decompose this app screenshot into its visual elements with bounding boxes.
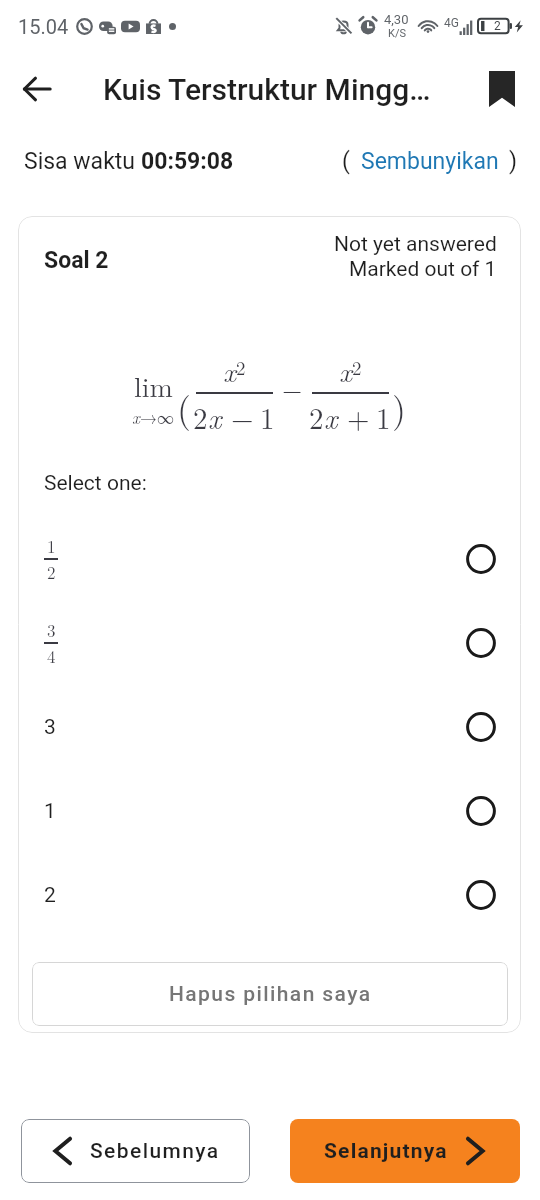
- staticText: 1: [44, 799, 56, 824]
- staticText: 1: [260, 396, 275, 437]
- staticText: +: [347, 396, 370, 437]
- staticText: Selanjutnya: [324, 1139, 448, 1164]
- staticText: ): [509, 148, 518, 175]
- staticText: ): [392, 381, 407, 432]
- staticText: Hapus pilihan saya: [169, 982, 372, 1007]
- button[interactable]: Sebelumnya: [21, 1119, 250, 1183]
- staticText: Sisa waktu: [24, 148, 141, 175]
- staticText: Kuis Terstruktur Mingg…: [103, 72, 431, 107]
- staticText: 2: [47, 560, 56, 584]
- button[interactable]: 3: [18, 685, 521, 769]
- staticText: (: [177, 381, 192, 432]
- staticText: x: [339, 350, 352, 390]
- staticText: Sebelumnya: [90, 1139, 220, 1164]
- button[interactable]: 3: [18, 601, 521, 685]
- staticText: K/S: [388, 27, 406, 40]
- staticText: x: [132, 405, 140, 429]
- staticText: 4: [47, 644, 56, 668]
- staticText: (: [342, 148, 350, 175]
- staticText: Not yet answered: [334, 232, 497, 257]
- staticText: 4,30: [384, 12, 409, 27]
- staticText: 1: [376, 396, 391, 437]
- button[interactable]: 1: [18, 769, 521, 853]
- staticText: x: [223, 350, 236, 390]
- staticText: 1: [47, 534, 56, 558]
- button[interactable]: 1: [18, 517, 521, 601]
- button[interactable]: Selanjutnya: [290, 1119, 520, 1183]
- staticText: Sembunyikan: [361, 148, 499, 175]
- staticText: x: [208, 396, 222, 437]
- staticText: −: [282, 370, 303, 407]
- button[interactable]: 2: [18, 853, 521, 937]
- staticText: 3: [47, 618, 56, 642]
- staticText: x: [324, 396, 338, 437]
- staticText: 2: [352, 354, 362, 381]
- button[interactable]: Bookmark: [466, 52, 540, 126]
- button[interactable]: Back: [0, 52, 74, 126]
- staticText: Marked out of 1: [349, 257, 497, 282]
- staticText: lim: [134, 365, 173, 405]
- staticText: 2: [193, 396, 208, 437]
- button[interactable]: Sembunyikan: [361, 148, 499, 175]
- staticText: →∞: [140, 405, 174, 429]
- staticText: Soal 2: [44, 247, 109, 274]
- staticText: 2: [236, 354, 246, 381]
- staticText: 2: [494, 19, 501, 33]
- button[interactable]: Hapus pilihan saya: [32, 962, 508, 1026]
- staticText: Select one:: [44, 471, 147, 496]
- staticText: 2: [44, 883, 56, 908]
- staticText: 4G: [444, 16, 459, 30]
- staticText: 15.04: [18, 15, 69, 38]
- staticText: 00:59:08: [141, 148, 234, 175]
- staticText: 3: [44, 715, 56, 740]
- staticText: 2: [309, 396, 324, 437]
- staticText: −: [231, 396, 254, 437]
